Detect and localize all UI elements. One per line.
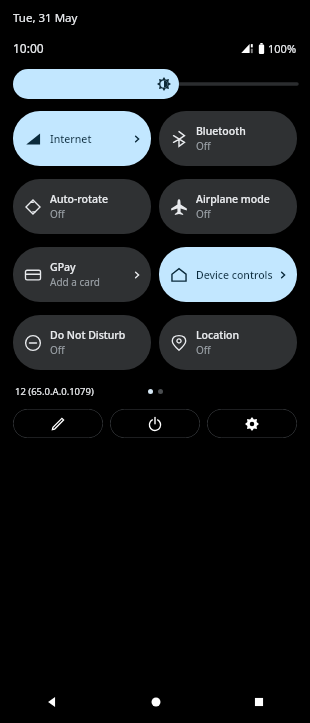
button[interactable]: Auto-rotate <box>13 179 151 234</box>
staticText: Add a card <box>50 275 100 289</box>
button[interactable]: GPay <box>13 247 151 302</box>
staticText: Off <box>196 207 211 221</box>
button[interactable]: Edit <box>13 409 103 438</box>
staticText: Internet <box>50 132 92 146</box>
staticText: Do Not Disturb <box>50 328 126 342</box>
button[interactable]: Back <box>0 680 104 723</box>
staticText: 12 (65.0.A.0.1079) <box>15 385 94 398</box>
staticText: Device controls <box>196 268 273 282</box>
button[interactable]: Airplane mode <box>159 179 297 234</box>
staticText: GPay <box>50 260 76 274</box>
button[interactable]: Location <box>159 315 297 370</box>
staticText: Location <box>196 328 240 342</box>
button[interactable]: Bluetooth <box>159 111 297 166</box>
staticText: Off <box>50 343 65 357</box>
staticText: Off <box>196 343 211 357</box>
button[interactable]: Brightness <box>13 69 297 99</box>
staticText: Auto-rotate <box>50 192 108 206</box>
staticText: Airplane mode <box>196 192 270 206</box>
staticText: Bluetooth <box>196 124 246 138</box>
staticText: 10:00 <box>13 40 44 56</box>
button[interactable]: Recents <box>207 680 310 723</box>
staticText: 100% <box>268 41 297 56</box>
button[interactable]: Internet <box>13 111 151 166</box>
staticText: Tue, 31 May <box>13 10 78 26</box>
button[interactable]: Do Not Disturb <box>13 315 151 370</box>
button[interactable]: Device controls <box>159 247 297 302</box>
staticText: Off <box>196 139 211 153</box>
button[interactable]: Power <box>110 409 200 438</box>
button[interactable]: Settings <box>207 409 297 438</box>
staticText: Off <box>50 207 65 221</box>
button[interactable]: Home <box>104 680 207 723</box>
